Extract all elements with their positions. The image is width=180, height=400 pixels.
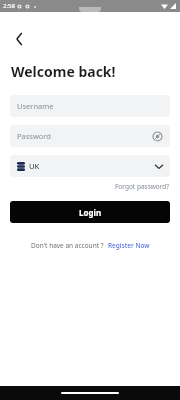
button[interactable]: UK bbox=[10, 155, 170, 177]
button[interactable]: Back bbox=[8, 28, 30, 50]
staticText: Don't have an account ? bbox=[31, 241, 104, 250]
staticText: 2:58 bbox=[3, 2, 15, 10]
button[interactable]: Show password bbox=[152, 131, 163, 142]
button[interactable]: Forgot password? bbox=[115, 182, 170, 191]
button[interactable]: Username bbox=[10, 95, 170, 117]
staticText: UK bbox=[29, 161, 40, 171]
button[interactable]: Register Now bbox=[108, 241, 150, 250]
staticText: Password bbox=[17, 131, 51, 141]
staticText: Login bbox=[79, 207, 102, 218]
button[interactable]: Password bbox=[10, 125, 170, 147]
button[interactable]: Login bbox=[10, 201, 170, 223]
staticText: Welcome back! bbox=[11, 62, 116, 81]
staticText: Username bbox=[17, 101, 54, 111]
